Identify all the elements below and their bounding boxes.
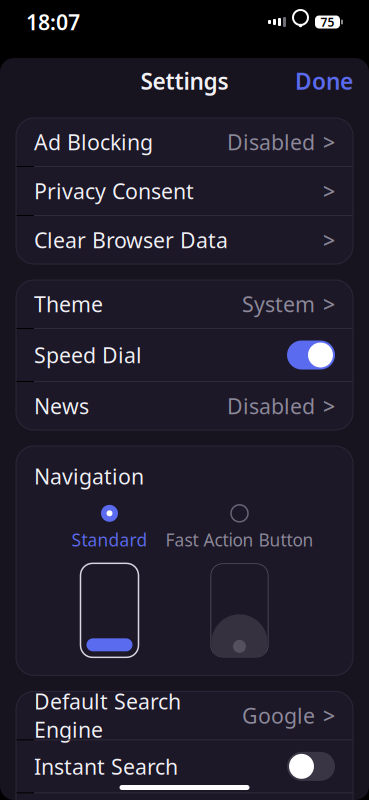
button[interactable]: Fast Action Button — [164, 504, 314, 657]
staticText: News — [34, 392, 89, 420]
staticText: System — [242, 290, 315, 318]
staticText: > — [323, 290, 335, 318]
staticText: > — [323, 701, 335, 729]
staticText: > — [323, 177, 335, 205]
button[interactable]: Instant Search — [16, 740, 353, 792]
button[interactable]: Standard — [54, 504, 164, 657]
staticText: Settings — [140, 66, 228, 96]
staticText: Speed Dial — [34, 341, 142, 369]
staticText: Standard — [71, 528, 147, 551]
button[interactable]: News — [16, 382, 353, 430]
button[interactable]: Speed Dial — [16, 329, 353, 381]
staticText: 75 — [320, 14, 334, 30]
button[interactable]: Privacy Consent — [16, 167, 353, 215]
staticText: Default Search Engine — [34, 687, 181, 744]
staticText: Google — [242, 701, 315, 729]
staticText: Disabled — [227, 392, 315, 420]
staticText: Theme — [34, 290, 103, 318]
staticText: Fast Action Button — [165, 528, 313, 551]
staticText: Disabled — [227, 128, 315, 156]
staticText: Privacy Consent — [34, 177, 194, 205]
staticText: 18:07 — [26, 8, 80, 36]
staticText: Navigation — [34, 462, 144, 490]
button[interactable]: Default Search Engine — [16, 691, 353, 739]
staticText: Instant Search — [34, 752, 178, 780]
staticText: Ad Blocking — [34, 128, 153, 156]
button[interactable]: Clear Browser Data — [16, 216, 353, 264]
staticText: > — [323, 128, 335, 156]
staticText: Clear Browser Data — [34, 226, 228, 254]
staticText: > — [323, 226, 335, 254]
staticText: > — [323, 392, 335, 420]
button[interactable]: Done — [279, 56, 369, 106]
button[interactable]: Theme — [16, 280, 353, 328]
staticText: Done — [295, 66, 353, 96]
button[interactable]: Ad Blocking — [16, 118, 353, 166]
